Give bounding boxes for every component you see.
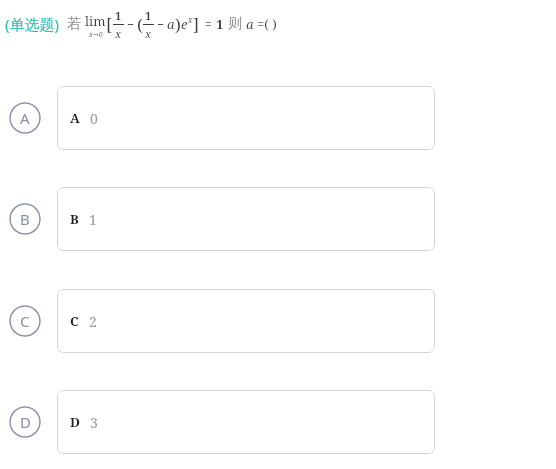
staticText: ) <box>175 13 181 36</box>
staticText: 3 <box>90 413 98 432</box>
staticText: − <box>157 16 164 32</box>
button[interactable]: A <box>57 86 435 150</box>
staticText: x <box>188 14 193 25</box>
staticText: B <box>20 209 30 229</box>
button[interactable]: Select option C <box>9 305 41 337</box>
staticText: 1 <box>115 8 122 23</box>
staticText: a <box>167 15 175 33</box>
staticText: lim <box>85 12 106 30</box>
staticText: − <box>127 16 134 32</box>
staticText: a <box>246 15 254 33</box>
button[interactable]: D <box>57 390 435 454</box>
staticText: = <box>205 16 212 32</box>
staticText: [ <box>106 13 113 36</box>
staticText: C <box>20 311 30 331</box>
staticText: 1 <box>145 8 152 23</box>
staticText: x→0 <box>89 30 103 40</box>
staticText: D <box>70 413 80 431</box>
staticText: (单选题) <box>5 14 60 34</box>
staticText: 2 <box>89 312 97 331</box>
button[interactable]: Select option B <box>9 203 41 235</box>
staticText: ( <box>137 13 143 36</box>
staticText: 若 <box>67 15 81 33</box>
staticText: D <box>20 412 31 432</box>
staticText: A <box>20 108 30 128</box>
staticText: x <box>145 26 152 40</box>
button[interactable]: Select option D <box>9 406 41 438</box>
staticText: B <box>70 210 79 228</box>
staticText: 0 <box>90 109 98 128</box>
staticText: e <box>181 15 188 33</box>
button[interactable]: B <box>57 187 435 251</box>
staticText: C <box>70 312 79 330</box>
staticText: 则 <box>228 15 242 33</box>
staticText: 1 <box>89 210 97 229</box>
staticText: ] <box>193 13 200 36</box>
staticText: A <box>70 109 80 127</box>
staticText: x <box>115 26 122 40</box>
button[interactable]: C <box>57 289 435 353</box>
button[interactable]: Select option A <box>9 102 41 134</box>
staticText: 1 <box>216 15 224 33</box>
staticText: =( ) <box>257 15 277 33</box>
